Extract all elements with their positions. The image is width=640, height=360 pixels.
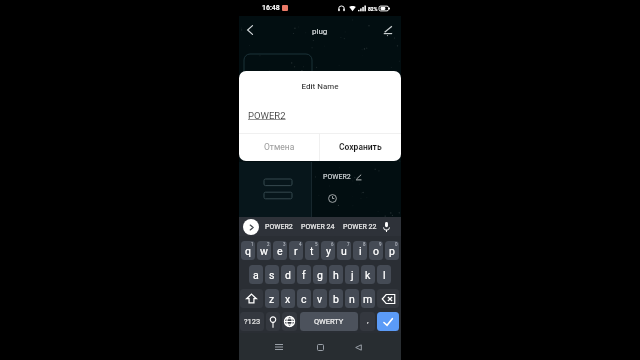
- button[interactable]: Отмена: [239, 134, 319, 161]
- button[interactable]: Done: [377, 312, 399, 331]
- button[interactable]: Change language: [282, 312, 297, 331]
- button[interactable]: Expand suggestions: [243, 219, 259, 235]
- button[interactable]: Backspace: [377, 289, 399, 308]
- staticText: 0: [395, 242, 398, 247]
- button[interactable]: Back: [348, 337, 368, 357]
- button[interactable]: j: [345, 265, 359, 284]
- staticText: 3: [283, 242, 286, 247]
- button[interactable]: g: [313, 265, 327, 284]
- button[interactable]: 8: [353, 241, 367, 260]
- staticText: s: [269, 269, 275, 281]
- button[interactable]: QWERTY: [300, 312, 358, 331]
- staticText: Edit Name: [239, 82, 401, 91]
- button[interactable]: 7: [337, 241, 351, 260]
- button[interactable]: k: [361, 265, 375, 284]
- button[interactable]: Back: [239, 19, 261, 41]
- staticText: 8: [363, 242, 366, 247]
- staticText: plug: [312, 27, 328, 36]
- staticText: POWER2: [323, 173, 351, 181]
- staticText: k: [365, 269, 371, 281]
- staticText: 5: [315, 242, 318, 247]
- button[interactable]: Voice input: [379, 220, 393, 234]
- staticText: ,: [367, 316, 369, 325]
- staticText: 7: [347, 242, 350, 247]
- staticText: c: [301, 293, 307, 305]
- staticText: POWER2: [248, 110, 286, 121]
- button[interactable]: 9: [369, 241, 383, 260]
- staticText: 6: [331, 242, 334, 247]
- staticText: l: [383, 269, 386, 281]
- button[interactable]: 0: [385, 241, 399, 260]
- button[interactable]: 6: [321, 241, 335, 260]
- button[interactable]: Edit name: [376, 19, 398, 41]
- button[interactable]: Home: [310, 337, 330, 357]
- staticText: Сохранить: [339, 142, 382, 152]
- staticText: z: [269, 293, 275, 305]
- button[interactable]: Emoji: [266, 312, 280, 331]
- staticText: x: [285, 293, 291, 305]
- staticText: b: [333, 293, 339, 305]
- staticText: j: [351, 269, 354, 281]
- staticText: g: [317, 269, 323, 281]
- staticText: 9: [379, 242, 382, 247]
- button[interactable]: f: [297, 265, 311, 284]
- staticText: u: [341, 245, 347, 257]
- staticText: m: [363, 293, 373, 305]
- staticText: a: [253, 269, 259, 281]
- button[interactable]: 5: [305, 241, 319, 260]
- staticText: ?123: [244, 317, 261, 326]
- button[interactable]: Сохранить: [320, 134, 401, 161]
- button[interactable]: h: [329, 265, 343, 284]
- staticText: y: [326, 245, 331, 257]
- button[interactable]: Shift: [240, 289, 263, 308]
- staticText: o: [373, 245, 379, 257]
- button[interactable]: n: [345, 289, 359, 308]
- staticText: v: [317, 293, 323, 305]
- button[interactable]: z: [265, 289, 279, 308]
- button[interactable]: 2: [257, 241, 271, 260]
- staticText: f: [302, 269, 306, 281]
- button[interactable]: POWER 24: [301, 223, 335, 231]
- staticText: p: [389, 245, 395, 257]
- staticText: Отмена: [264, 142, 295, 152]
- button[interactable]: ?123: [240, 312, 264, 331]
- button[interactable]: Recent apps: [269, 337, 289, 357]
- button[interactable]: c: [297, 289, 311, 308]
- staticText: h: [333, 269, 339, 281]
- button[interactable]: a: [249, 265, 263, 284]
- button[interactable]: l: [377, 265, 391, 284]
- staticText: d: [285, 269, 291, 281]
- staticText: 16:48: [262, 4, 280, 12]
- staticText: 4: [299, 242, 302, 247]
- button[interactable]: 4: [289, 241, 303, 260]
- button[interactable]: POWER2: [265, 223, 293, 231]
- button[interactable]: POWER 22: [343, 223, 377, 231]
- button[interactable]: Symbols: [360, 312, 375, 331]
- button[interactable]: s: [265, 265, 279, 284]
- staticText: n: [349, 293, 355, 305]
- staticText: i: [359, 245, 362, 257]
- button[interactable]: x: [281, 289, 295, 308]
- staticText: r: [294, 245, 298, 257]
- staticText: 2: [267, 242, 270, 247]
- staticText: t: [310, 245, 314, 257]
- staticText: QWERTY: [314, 317, 344, 326]
- staticText: 1: [251, 242, 254, 247]
- button[interactable]: m: [361, 289, 375, 308]
- staticText: e: [277, 245, 283, 257]
- button[interactable]: v: [313, 289, 327, 308]
- button[interactable]: b: [329, 289, 343, 308]
- staticText: w: [260, 245, 268, 257]
- staticText: q: [245, 245, 251, 257]
- staticText: 82%: [368, 6, 378, 12]
- button[interactable]: 1: [241, 241, 255, 260]
- button[interactable]: d: [281, 265, 295, 284]
- button[interactable]: 3: [273, 241, 287, 260]
